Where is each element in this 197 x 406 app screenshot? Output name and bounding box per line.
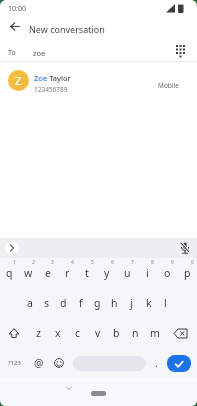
button[interactable]: ?123 — [0, 348, 28, 378]
staticText: To — [8, 48, 16, 58]
staticText: Mobile — [158, 81, 179, 90]
staticText: 0 — [191, 259, 194, 266]
staticText: 3 — [51, 259, 54, 266]
staticText: 123456789 — [34, 85, 68, 94]
staticText: h — [111, 296, 118, 310]
staticText: a — [27, 296, 33, 310]
staticText: t — [85, 266, 89, 280]
button[interactable]: w — [19, 258, 38, 288]
staticText: y — [104, 266, 110, 280]
staticText: g — [94, 296, 101, 310]
button[interactable]: l — [157, 288, 174, 318]
button[interactable]: t — [77, 258, 97, 288]
button[interactable]: i — [137, 258, 157, 288]
button[interactable]: b — [107, 318, 126, 348]
staticText: j — [130, 296, 133, 310]
button[interactable]: u — [117, 258, 137, 288]
button[interactable] — [0, 318, 28, 348]
button[interactable]: @ — [28, 348, 49, 378]
button[interactable]: Z — [0, 62, 197, 102]
button[interactable]: n — [126, 318, 145, 348]
button[interactable]: p — [177, 258, 197, 288]
staticText: r — [65, 266, 70, 280]
staticText: w — [24, 266, 33, 280]
button[interactable]: z — [28, 318, 48, 348]
button[interactable]: d — [55, 288, 72, 318]
staticText: 1 — [13, 259, 16, 266]
button[interactable]: y — [97, 258, 117, 288]
button[interactable]: v — [88, 318, 107, 348]
staticText: 2 — [32, 259, 35, 266]
button[interactable]: q — [0, 258, 19, 288]
staticText: zoe — [33, 48, 46, 58]
button[interactable] — [178, 241, 192, 255]
staticText: f — [79, 296, 83, 310]
staticText: z — [36, 326, 41, 340]
button[interactable]: s — [38, 288, 55, 318]
staticText: New conversation — [29, 23, 105, 35]
staticText: x — [55, 326, 61, 340]
staticText: 8 — [151, 259, 154, 266]
button[interactable]: r — [57, 258, 77, 288]
staticText: s — [44, 296, 50, 310]
staticText: o — [164, 266, 171, 280]
button[interactable]: c — [68, 318, 88, 348]
button[interactable] — [167, 355, 191, 372]
button[interactable]: a — [22, 288, 38, 318]
button[interactable]: m — [145, 318, 164, 348]
staticText: i — [146, 266, 149, 280]
staticText: Zoe Taylor — [34, 73, 71, 83]
staticText: c — [75, 326, 81, 340]
button[interactable]: x — [48, 318, 68, 348]
staticText: 10:00 — [8, 4, 26, 14]
staticText: p — [184, 266, 191, 280]
staticText: . — [155, 356, 158, 370]
button[interactable] — [5, 241, 19, 255]
staticText: 4 — [71, 259, 74, 266]
staticText: b — [113, 326, 120, 340]
staticText: e — [45, 266, 51, 280]
staticText: Z — [15, 73, 22, 88]
staticText: ?123 — [8, 359, 21, 367]
staticText: n — [132, 326, 139, 340]
button[interactable]: j — [123, 288, 140, 318]
staticText: l — [164, 296, 167, 310]
button[interactable]: k — [140, 288, 157, 318]
button[interactable]: . — [146, 348, 167, 378]
staticText: u — [124, 266, 131, 280]
button[interactable] — [164, 318, 197, 348]
staticText: 5 — [91, 259, 94, 266]
button[interactable] — [73, 356, 146, 371]
button[interactable]: f — [72, 288, 89, 318]
staticText: q — [6, 266, 13, 280]
button[interactable]: g — [89, 288, 106, 318]
button[interactable] — [49, 348, 69, 378]
button[interactable]: h — [106, 288, 123, 318]
button[interactable] — [168, 43, 190, 61]
staticText: @ — [34, 356, 44, 370]
staticText: v — [95, 326, 101, 340]
staticText: k — [146, 296, 152, 310]
staticText: 6 — [111, 259, 114, 266]
button[interactable]: e — [38, 258, 57, 288]
staticText: m — [150, 326, 160, 340]
button[interactable] — [6, 18, 26, 35]
staticText: 7 — [131, 259, 134, 266]
button[interactable]: o — [157, 258, 177, 288]
staticText: d — [60, 296, 67, 310]
staticText: 9 — [171, 259, 174, 266]
